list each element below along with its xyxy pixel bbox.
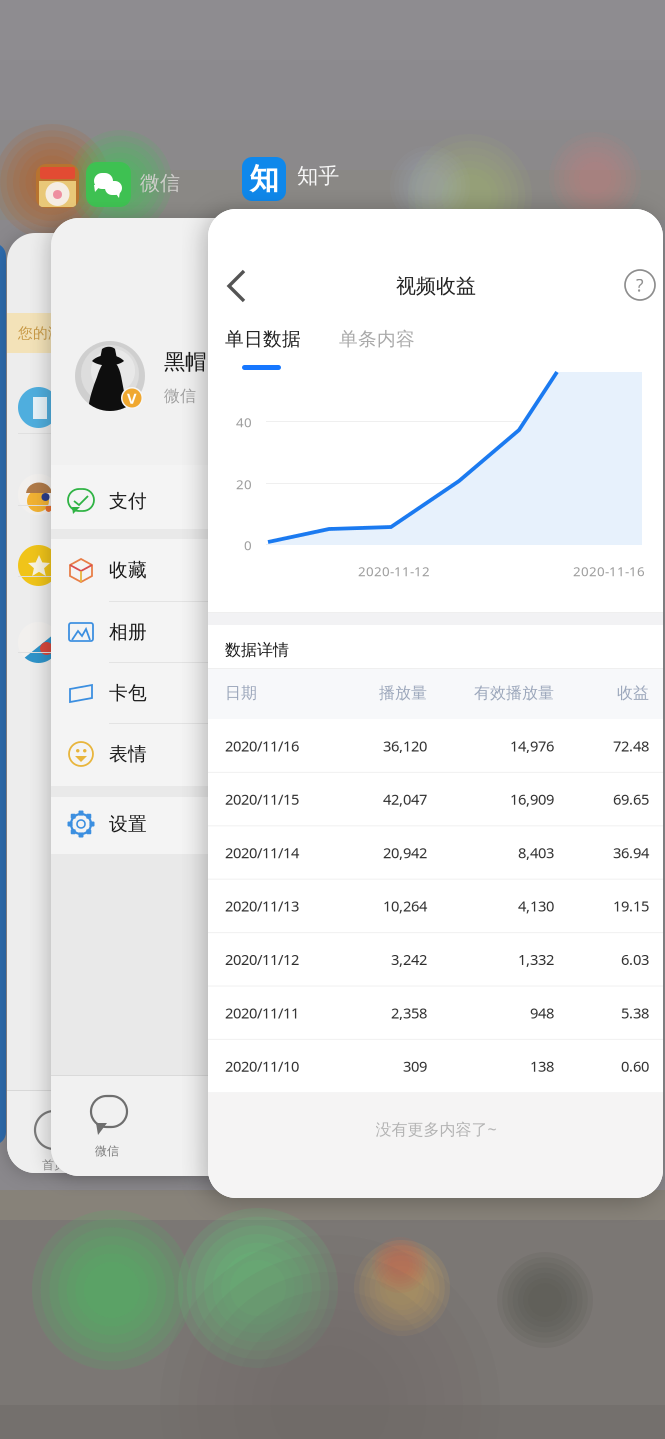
staticText: 首页 xyxy=(42,1158,66,1172)
staticText: 视频收益 xyxy=(396,274,476,298)
staticText: 309 xyxy=(403,1056,427,1076)
staticText: 20,942 xyxy=(383,843,427,862)
staticText: 日期 xyxy=(225,683,257,703)
staticText: 卡包 xyxy=(109,681,147,704)
button[interactable]: 卡包 xyxy=(51,218,283,1176)
staticText: 微信 xyxy=(95,1144,119,1158)
staticText: 2020/11/13 xyxy=(225,896,299,916)
staticText: 69.65 xyxy=(613,789,649,809)
staticText: 有效播放量 xyxy=(474,683,554,703)
staticText: 36.94 xyxy=(613,843,649,862)
staticText: 微信 xyxy=(140,171,180,195)
staticText: 2020/11/10 xyxy=(225,1056,299,1076)
staticText: 2020/11/14 xyxy=(225,843,299,862)
staticText: 4,130 xyxy=(518,896,554,916)
button[interactable]: Help xyxy=(625,270,655,300)
staticText: 5.38 xyxy=(621,1003,649,1022)
staticText: 36,120 xyxy=(383,736,427,755)
staticText: 948 xyxy=(530,1003,554,1022)
staticText: ? xyxy=(636,273,644,296)
staticText: 72.48 xyxy=(613,736,649,755)
staticText: 知乎 xyxy=(297,163,339,189)
staticText: 0.60 xyxy=(621,1056,649,1076)
staticText: 8,403 xyxy=(518,843,554,862)
staticText: 知 xyxy=(249,161,278,197)
staticText: 播放量 xyxy=(379,683,427,703)
staticText: 6.03 xyxy=(621,950,649,969)
staticText: 设置 xyxy=(109,812,147,835)
staticText: 相册 xyxy=(109,620,147,643)
staticText: 3,242 xyxy=(391,950,427,969)
button[interactable]: 单日数据 xyxy=(208,209,663,1198)
staticText: 支付 xyxy=(109,489,147,512)
staticText: 40 xyxy=(236,413,252,431)
staticText: V xyxy=(127,388,137,408)
button[interactable]: 设置 xyxy=(51,218,283,1176)
staticText: 2020/11/15 xyxy=(225,789,299,809)
staticText: 2,358 xyxy=(391,1003,427,1022)
button[interactable]: 支付 xyxy=(51,218,283,1176)
staticText: 0 xyxy=(244,536,252,554)
staticText: 单条内容 xyxy=(339,327,415,350)
staticText: 10,264 xyxy=(383,896,427,916)
button[interactable]: 收藏 xyxy=(51,218,283,1176)
staticText: 1,332 xyxy=(518,950,554,969)
staticText: 2020/11/12 xyxy=(225,950,299,969)
staticText: 没有更多内容了~ xyxy=(375,1118,496,1140)
staticText: 收益 xyxy=(617,683,649,703)
button[interactable]: 相册 xyxy=(51,218,283,1176)
staticText: 14,976 xyxy=(510,736,554,755)
staticText: 数据详情 xyxy=(225,640,289,660)
button[interactable]: Back xyxy=(216,263,258,309)
staticText: 收藏 xyxy=(109,558,147,581)
staticText: 2020/11/16 xyxy=(225,736,299,755)
staticText: 2020-11-12 xyxy=(358,562,430,580)
button[interactable]: 表情 xyxy=(51,218,283,1176)
staticText: 16,909 xyxy=(510,789,554,809)
staticText: 19.15 xyxy=(613,896,649,916)
staticText: 黑帽 xyxy=(164,349,206,375)
staticText: 2020/11/11 xyxy=(225,1003,299,1022)
staticText: 表情 xyxy=(109,742,147,765)
staticText: 单日数据 xyxy=(225,327,301,350)
staticText: 42,047 xyxy=(383,789,427,809)
staticText: 您的满 xyxy=(18,324,63,342)
staticText: 微信 xyxy=(164,386,196,406)
button[interactable]: 单条内容 xyxy=(208,209,663,1198)
staticText: 20 xyxy=(236,475,252,493)
staticText: 138 xyxy=(530,1056,554,1076)
staticText: 2020-11-16 xyxy=(573,562,645,580)
